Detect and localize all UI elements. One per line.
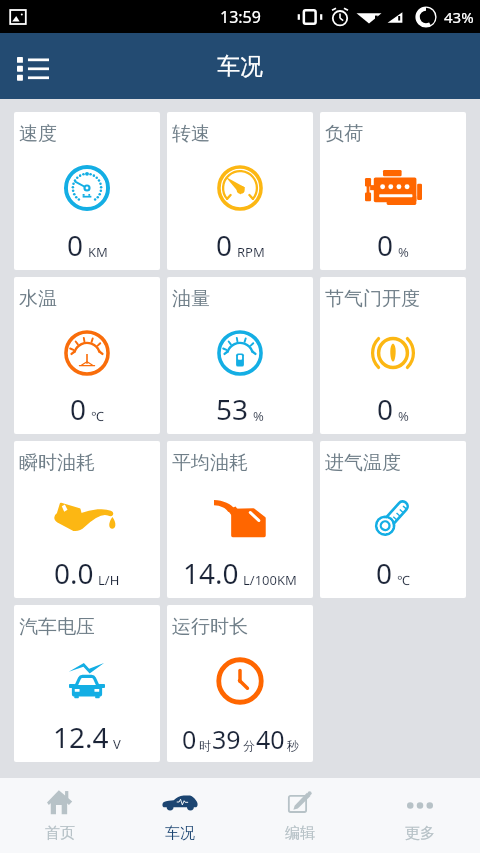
staticText: 速度	[19, 122, 57, 146]
button[interactable]: 平均油耗	[167, 441, 313, 598]
staticText: 0	[377, 390, 394, 428]
button[interactable]: 负荷	[320, 112, 466, 270]
staticText: 43%	[444, 7, 474, 27]
staticText: 39	[212, 722, 241, 756]
staticText: %	[398, 407, 409, 425]
button[interactable]: 进气温度	[320, 441, 466, 598]
button[interactable]: 瞬时油耗	[14, 441, 160, 598]
staticText: 14.0	[183, 554, 239, 592]
staticText: 进气温度	[325, 451, 401, 475]
staticText: 运行时长	[172, 615, 248, 639]
staticText: ℃	[397, 571, 410, 589]
staticText: 瞬时油耗	[19, 451, 95, 475]
button[interactable]: 油量	[167, 277, 313, 434]
staticText: 车况	[165, 824, 195, 843]
staticText: 更多	[405, 824, 435, 843]
button[interactable]: 水温	[14, 277, 160, 434]
staticText: 12.4	[53, 718, 109, 756]
staticText: 时	[199, 738, 211, 753]
staticText: 0.0	[54, 554, 94, 592]
staticText: 首页	[45, 824, 75, 843]
staticText: 负荷	[325, 122, 363, 146]
staticText: 编辑	[285, 824, 315, 843]
staticText: 转速	[172, 122, 210, 146]
staticText: RPM	[237, 243, 265, 261]
staticText: 0	[377, 226, 394, 264]
button[interactable]: 更多	[360, 778, 480, 853]
staticText: 秒	[287, 738, 299, 753]
button[interactable]: 运行时长	[167, 605, 313, 762]
button[interactable]: 车况	[120, 778, 240, 853]
staticText: ℃	[91, 407, 104, 425]
staticText: %	[253, 407, 264, 425]
staticText: 0	[376, 554, 393, 592]
staticText: 0	[70, 390, 87, 428]
button[interactable]: Menu	[17, 50, 49, 82]
button[interactable]: 首页	[0, 778, 120, 853]
button[interactable]: 转速	[167, 112, 313, 270]
staticText: 水温	[19, 287, 57, 311]
button[interactable]: 节气门开度	[320, 277, 466, 434]
staticText: %	[398, 243, 409, 261]
button[interactable]: 速度	[14, 112, 160, 270]
staticText: 0	[216, 226, 233, 264]
button[interactable]: 汽车电压	[14, 605, 160, 762]
staticText: 53	[216, 390, 249, 428]
staticText: V	[113, 735, 121, 753]
staticText: 节气门开度	[325, 287, 420, 311]
staticText: L/100KM	[243, 571, 297, 589]
staticText: 0	[182, 722, 197, 756]
staticText: 油量	[172, 287, 210, 311]
staticText: L/H	[98, 571, 120, 589]
staticText: KM	[88, 243, 108, 261]
staticText: 40	[256, 722, 285, 756]
staticText: 车况	[217, 52, 263, 81]
staticText: 汽车电压	[19, 615, 95, 639]
staticText: 13:59	[220, 6, 261, 28]
button[interactable]: 编辑	[240, 778, 360, 853]
staticText: 分	[243, 738, 255, 753]
staticText: 平均油耗	[172, 451, 248, 475]
staticText: 0	[67, 226, 84, 264]
